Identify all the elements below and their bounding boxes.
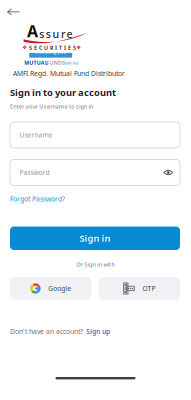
staticText: Enter your Username to sign in bbox=[10, 103, 93, 110]
staticText: Password bbox=[19, 168, 49, 177]
button[interactable]: Back bbox=[0, 3, 26, 21]
staticText: MUTUAL bbox=[24, 59, 48, 66]
staticText: SECURITIES bbox=[29, 44, 76, 51]
button[interactable]: Forgot Password? bbox=[10, 194, 66, 203]
button[interactable]: Sign in bbox=[10, 226, 180, 250]
staticText: Sahi Hai bbox=[64, 60, 78, 65]
staticText: AMFI Regd. Mutual Fund Distributor bbox=[13, 69, 125, 78]
staticText: ❖ bbox=[76, 44, 81, 50]
staticText: OTP bbox=[142, 284, 155, 293]
staticText: FUNDS bbox=[46, 59, 65, 66]
staticText: Don't have an account? bbox=[10, 327, 83, 336]
staticText: ssure bbox=[39, 27, 73, 41]
staticText: Google bbox=[48, 284, 71, 293]
staticText: securing you always... bbox=[35, 48, 66, 62]
button[interactable]: Sign up bbox=[86, 327, 110, 336]
staticText: Forgot Password? bbox=[10, 195, 65, 203]
staticText: Sign in to your account bbox=[10, 86, 116, 99]
staticText: ❖ bbox=[22, 44, 27, 50]
staticText: Sign in bbox=[79, 232, 110, 244]
button[interactable]: Sign in with Google bbox=[10, 277, 91, 300]
staticText: A bbox=[27, 20, 38, 42]
staticText: Or Sign in with bbox=[77, 261, 114, 268]
button[interactable]: Sign in with OTP bbox=[99, 277, 180, 300]
staticText: Sign up bbox=[86, 327, 110, 336]
staticText: Username bbox=[19, 131, 52, 139]
